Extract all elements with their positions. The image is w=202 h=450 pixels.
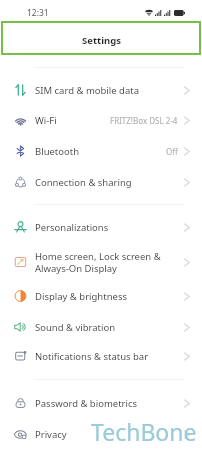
button[interactable]: Personalizations (0, 214, 202, 240)
staticText: Password & biometrics (35, 397, 184, 410)
button[interactable]: Display & brightness (0, 283, 202, 309)
staticText: FRITZ!Box DSL 2-4 (110, 115, 178, 126)
staticText: Connection & sharing (35, 176, 184, 189)
staticText: Bluetooth (35, 145, 166, 158)
staticText: SIM card & mobile data (35, 84, 184, 97)
button[interactable]: SIM card & mobile data (0, 77, 202, 103)
staticText: TechBone (91, 416, 197, 447)
staticText: Personalizations (35, 221, 184, 234)
staticText: Wi-Fi (35, 114, 110, 127)
staticText: 12:31 (27, 7, 49, 19)
button[interactable]: Privacy (0, 421, 202, 447)
button[interactable]: Wi-Fi (0, 107, 202, 133)
staticText: Sound & vibration (35, 321, 184, 334)
button[interactable]: Home screen, Lock screen & Always-On Dis… (0, 247, 202, 277)
button[interactable]: Settings (1, 21, 201, 55)
staticText: Off (166, 146, 178, 157)
button[interactable]: Sound & vibration (0, 314, 202, 340)
button[interactable]: Bluetooth (0, 138, 202, 164)
staticText: Settings (82, 34, 121, 47)
staticText: Home screen, Lock screen & Always-On Dis… (35, 250, 184, 275)
button[interactable]: Password & biometrics (0, 390, 202, 416)
button[interactable]: Connection & sharing (0, 169, 202, 195)
staticText: Display & brightness (35, 290, 184, 303)
staticText: Privacy (35, 428, 184, 441)
button[interactable]: Notifications & status bar (0, 343, 202, 369)
staticText: Notifications & status bar (35, 350, 184, 363)
